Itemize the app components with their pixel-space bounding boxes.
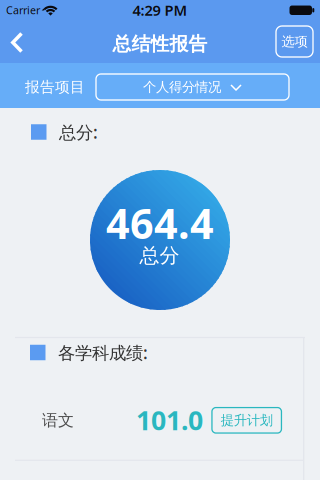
staticText: Carrier <box>6 3 40 17</box>
staticText: 语文 <box>42 411 74 430</box>
button[interactable]: 提升计划 <box>212 408 281 433</box>
button[interactable]: 选项 <box>276 26 313 57</box>
staticText: 个人得分情况 <box>143 79 221 95</box>
staticText: 各学科成绩: <box>58 341 148 364</box>
button[interactable]: 个人得分情况 <box>96 74 289 100</box>
staticText: 101.0 <box>136 402 203 438</box>
staticText: 总分: <box>59 120 98 143</box>
staticText: 464.4 <box>106 196 214 250</box>
button[interactable]: Back <box>0 20 32 63</box>
staticText: 总结性报告 <box>112 32 207 55</box>
staticText: 提升计划 <box>221 412 273 428</box>
staticText: 总分 <box>139 243 179 268</box>
staticText: 报告项目 <box>25 78 85 96</box>
staticText: 4:29 PM <box>132 0 187 20</box>
staticText: 选项 <box>281 33 307 50</box>
